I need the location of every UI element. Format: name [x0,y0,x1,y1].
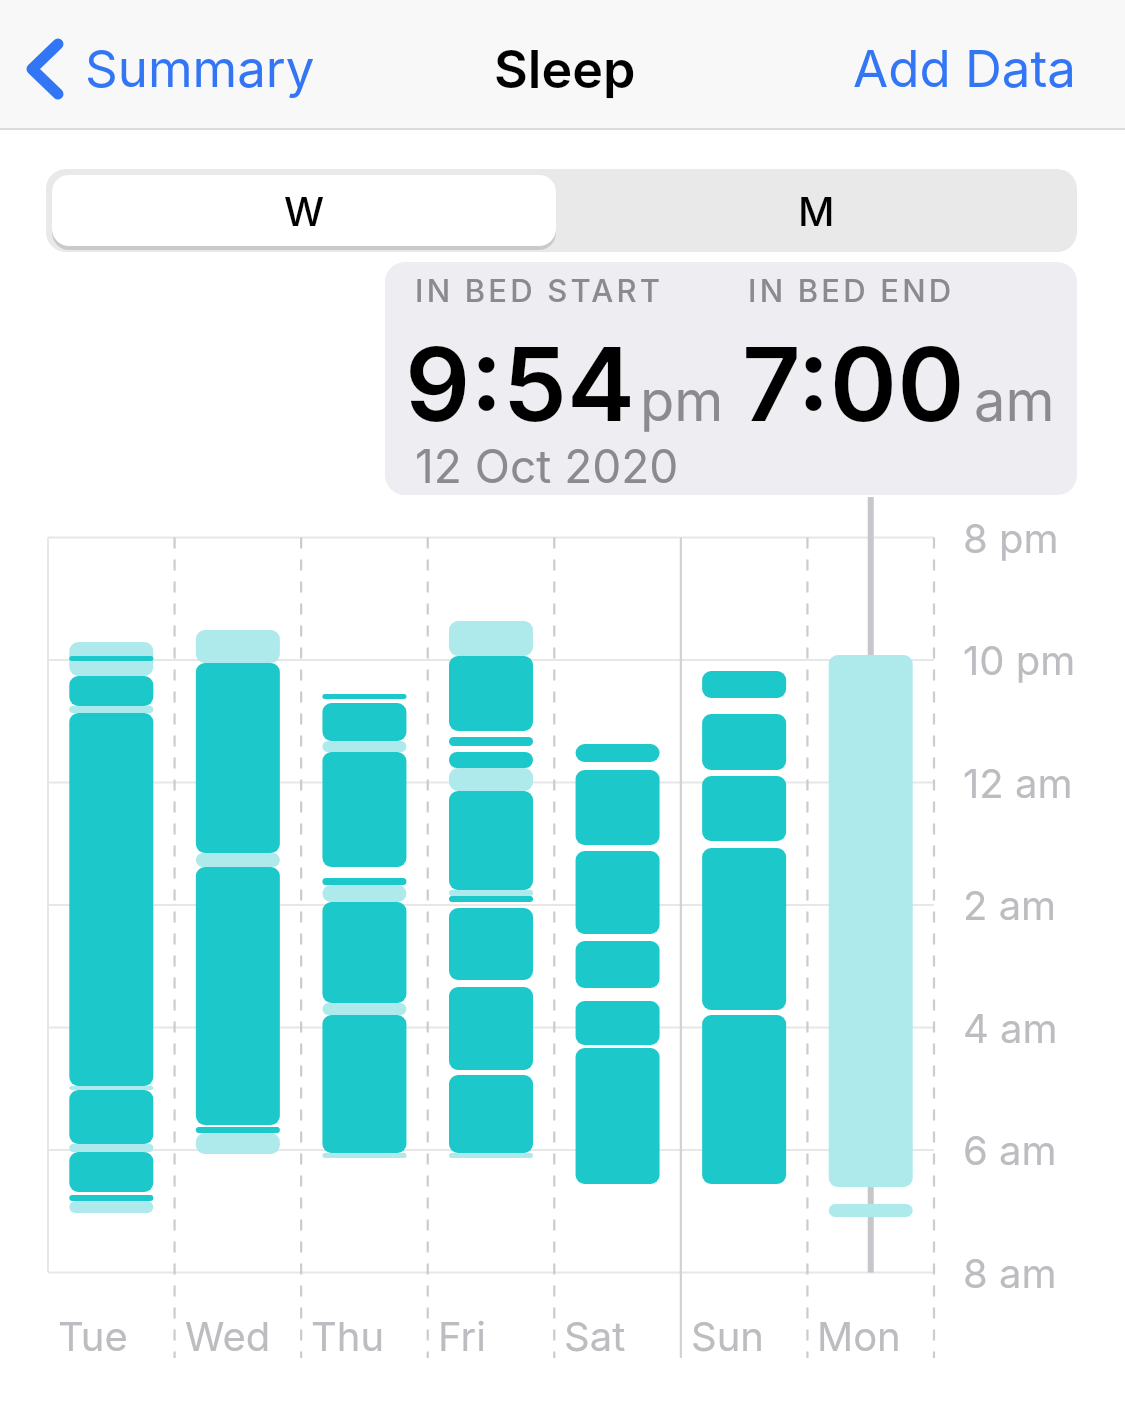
button[interactable] [681,538,808,1273]
staticText: 8 am [963,1249,1057,1297]
staticText: am [974,367,1055,435]
staticText: Sat [564,1312,626,1360]
staticText: W [284,187,325,235]
staticText: Sleep [494,38,636,101]
staticText: 12 Oct 2020 [415,438,679,494]
button[interactable] [428,538,555,1273]
button[interactable]: Add Data [827,30,1077,108]
button[interactable] [301,538,428,1273]
button[interactable]: Summary [20,30,315,108]
staticText: pm [640,367,724,435]
staticText: 4 am [963,1004,1058,1052]
staticText: Mon [817,1312,901,1360]
staticText: Summary [85,38,315,100]
button[interactable] [48,538,175,1273]
staticText: 12 am [963,759,1073,807]
button[interactable] [807,538,934,1273]
staticText: Wed [185,1312,271,1360]
staticText: Add Data [853,38,1077,100]
button[interactable]: W [52,175,556,246]
staticText: IN BED START [415,272,664,310]
button[interactable] [175,538,302,1273]
staticText: 7:00 [742,322,965,445]
button[interactable] [554,538,681,1273]
staticText: 2 am [963,881,1057,929]
staticText: Tue [58,1312,128,1360]
staticText: 6 am [963,1126,1057,1174]
staticText: 9:54 [405,322,635,445]
button[interactable]: M [556,169,1077,252]
staticText: 8 pm [963,514,1059,562]
staticText: Fri [438,1312,486,1360]
staticText: Thu [311,1312,385,1360]
staticText: 10 pm [963,636,1076,684]
staticText: M [798,187,835,235]
staticText: IN BED END [748,272,955,310]
staticText: Sun [691,1312,764,1360]
